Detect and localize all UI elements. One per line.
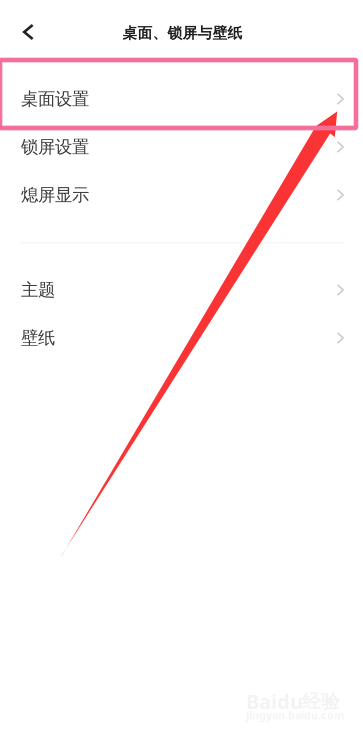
staticText: 桌面设置 xyxy=(21,88,89,110)
staticText: 锁屏设置 xyxy=(21,136,89,158)
staticText: 桌面、锁屏与壁纸 xyxy=(122,24,242,42)
button[interactable]: 熄屏显示 xyxy=(0,171,363,219)
staticText: 熄屏显示 xyxy=(21,184,89,206)
button[interactable]: 返回 xyxy=(6,10,50,54)
staticText: 壁纸 xyxy=(21,327,55,349)
button[interactable]: 锁屏设置 xyxy=(0,123,363,171)
button[interactable]: 壁纸 xyxy=(0,314,363,362)
staticText: Baidu xyxy=(246,688,303,715)
staticText: 主题 xyxy=(21,279,55,301)
button[interactable]: 桌面设置 xyxy=(0,75,363,123)
button[interactable]: 主题 xyxy=(0,266,363,314)
staticText: 经验 xyxy=(302,690,340,713)
staticText: jingyan.baidu.com xyxy=(246,708,344,722)
